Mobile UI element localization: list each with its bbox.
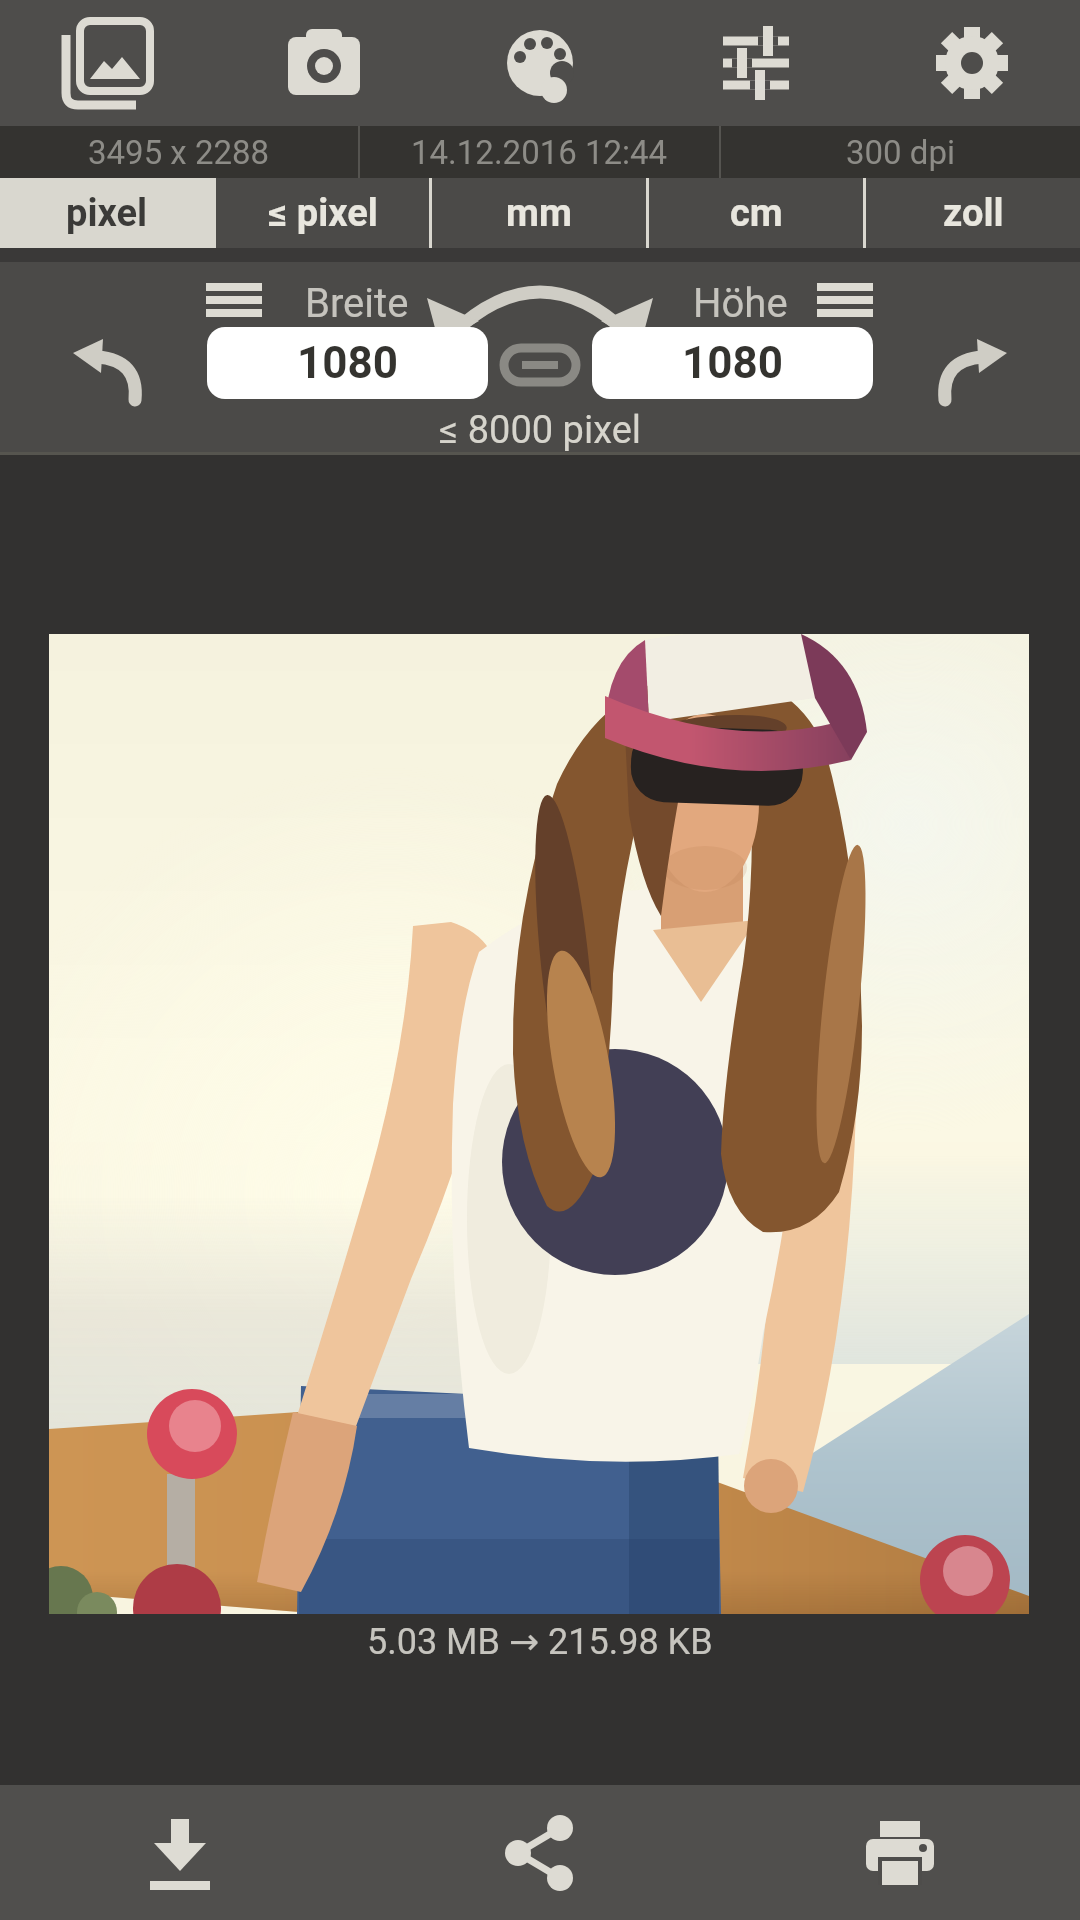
staticText: zoll (943, 191, 1004, 236)
button[interactable] (196, 272, 272, 328)
button[interactable] (216, 0, 432, 126)
staticText: cm (730, 191, 783, 236)
button[interactable] (864, 0, 1080, 126)
button[interactable] (720, 1785, 1080, 1920)
button[interactable]: zoll (866, 178, 1080, 248)
staticText: 1080 (297, 337, 398, 389)
staticText: 300 dpi (846, 133, 955, 172)
staticText: pixel (66, 191, 148, 236)
button[interactable]: cm (649, 178, 863, 248)
staticText: 3495 x 2288 (88, 133, 270, 172)
button[interactable]: Höhe (693, 280, 788, 327)
button[interactable]: mm (432, 178, 646, 248)
button[interactable]: pixel (0, 178, 213, 248)
staticText: 14.12.2016 12:44 (411, 133, 668, 172)
button[interactable]: 3495 x 2288 (0, 126, 358, 178)
staticText: 5.03 MB → 215.98 KB (367, 1621, 713, 1663)
button[interactable] (935, 325, 1015, 405)
button[interactable]: ≤ pixel (216, 178, 429, 248)
button[interactable] (65, 325, 145, 405)
staticText: ≤ 8000 pixel (439, 408, 642, 453)
button[interactable] (807, 272, 883, 328)
staticText: 1080 (682, 337, 783, 389)
button[interactable]: 14.12.2016 12:44 (360, 126, 719, 178)
staticText: ≤ pixel (268, 191, 378, 236)
button[interactable]: Breite (305, 280, 409, 327)
button[interactable] (0, 0, 216, 126)
button[interactable] (648, 0, 864, 126)
button[interactable] (432, 0, 648, 126)
button[interactable]: 300 dpi (721, 126, 1080, 178)
button[interactable] (360, 1785, 720, 1920)
button[interactable]: 1080 (592, 327, 873, 399)
staticText: mm (506, 191, 572, 236)
button[interactable] (0, 1785, 360, 1920)
button[interactable]: 1080 (207, 327, 488, 399)
button[interactable] (498, 339, 582, 391)
